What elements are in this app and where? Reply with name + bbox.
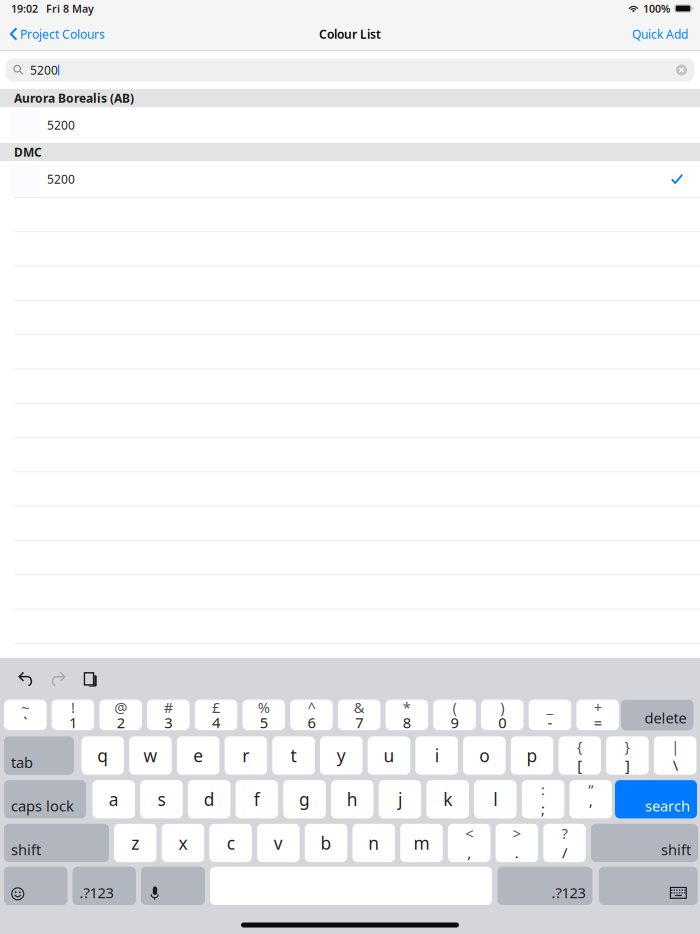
button[interactable]: ~ bbox=[4, 700, 46, 730]
staticText: ` bbox=[23, 713, 27, 732]
button[interactable]: 5200 bbox=[0, 107, 700, 143]
button[interactable]: @ bbox=[99, 700, 142, 730]
button[interactable]: tab bbox=[4, 736, 74, 775]
button[interactable]: k bbox=[426, 780, 469, 818]
button[interactable]: s bbox=[140, 780, 183, 818]
button[interactable]: | bbox=[654, 736, 696, 775]
button[interactable]: ! bbox=[52, 700, 94, 730]
button[interactable]: p bbox=[511, 736, 553, 775]
staticText: ’ bbox=[589, 799, 592, 819]
button[interactable]: + bbox=[576, 700, 619, 730]
button[interactable]: t bbox=[272, 736, 315, 775]
button[interactable]: ( bbox=[433, 700, 476, 730]
staticText: # bbox=[164, 698, 173, 717]
button[interactable]: Undo bbox=[10, 663, 42, 695]
staticText: 0 bbox=[498, 713, 506, 732]
staticText: tab bbox=[11, 752, 33, 772]
button[interactable]: .?123 bbox=[497, 867, 592, 905]
button[interactable]: & bbox=[338, 700, 380, 730]
button[interactable]: m bbox=[400, 824, 443, 862]
button[interactable]: shift bbox=[4, 824, 109, 862]
staticText: delete bbox=[644, 708, 686, 727]
button[interactable]: £ bbox=[195, 700, 237, 730]
staticText: i bbox=[435, 744, 439, 767]
button[interactable]: Dictate bbox=[141, 867, 205, 905]
staticText: ; bbox=[541, 799, 545, 819]
button[interactable]: ” bbox=[569, 780, 612, 818]
staticText: w bbox=[143, 744, 157, 767]
button[interactable]: e bbox=[177, 736, 219, 775]
button[interactable]: Clear text bbox=[676, 64, 687, 75]
staticText: . bbox=[515, 843, 519, 862]
button[interactable]: } bbox=[606, 736, 649, 775]
button[interactable]: v bbox=[257, 824, 300, 862]
button[interactable]: { bbox=[558, 736, 601, 775]
staticText: 9 bbox=[451, 713, 459, 732]
staticText: + bbox=[594, 698, 602, 717]
button[interactable]: < bbox=[448, 824, 490, 862]
button[interactable]: _ bbox=[529, 700, 571, 730]
staticText: e bbox=[193, 744, 203, 767]
button[interactable]: i bbox=[415, 736, 458, 775]
button[interactable]: Redo bbox=[42, 663, 74, 695]
button[interactable]: * bbox=[386, 700, 428, 730]
button[interactable]: u bbox=[368, 736, 410, 775]
button[interactable]: caps lock bbox=[4, 780, 86, 818]
button[interactable]: .?123 bbox=[72, 867, 136, 905]
staticText: _ bbox=[546, 698, 553, 717]
button[interactable]: > bbox=[496, 824, 538, 862]
button[interactable]: Quick Add bbox=[620, 17, 700, 50]
button[interactable]: h bbox=[331, 780, 373, 818]
button[interactable]: g bbox=[283, 780, 326, 818]
staticText: .?123 bbox=[79, 883, 113, 902]
staticText: ) bbox=[500, 698, 504, 717]
button[interactable]: Project Colours bbox=[0, 17, 115, 50]
button[interactable]: z bbox=[114, 824, 156, 862]
button[interactable]: 5200 bbox=[0, 161, 700, 197]
button[interactable]: Paste bbox=[74, 663, 104, 694]
button[interactable]: x bbox=[162, 824, 204, 862]
button[interactable]: f bbox=[236, 780, 278, 818]
button[interactable]: ) bbox=[481, 700, 523, 730]
staticText: Aurora Borealis (AB) bbox=[14, 90, 134, 106]
staticText: \ bbox=[673, 755, 678, 775]
button[interactable]: delete bbox=[621, 700, 693, 730]
button[interactable]: r bbox=[225, 736, 267, 775]
button[interactable]: a bbox=[92, 780, 135, 818]
staticText: < bbox=[465, 824, 473, 843]
button[interactable]: q bbox=[81, 736, 124, 775]
button[interactable]: o bbox=[463, 736, 506, 775]
staticText: c bbox=[227, 831, 235, 854]
staticText: 3 bbox=[164, 713, 172, 732]
staticText: [ bbox=[577, 755, 582, 775]
button[interactable]: # bbox=[147, 700, 190, 730]
button[interactable]: search bbox=[615, 780, 697, 818]
staticText: s bbox=[157, 788, 165, 811]
staticText: 4 bbox=[212, 713, 220, 732]
button[interactable]: n bbox=[352, 824, 395, 862]
staticText: b bbox=[321, 831, 332, 854]
button[interactable]: c bbox=[209, 824, 252, 862]
button[interactable]: : bbox=[522, 780, 564, 818]
button[interactable]: % bbox=[242, 700, 285, 730]
staticText: v bbox=[274, 831, 283, 854]
button[interactable]: Emoji bbox=[4, 867, 67, 905]
button[interactable]: shift bbox=[591, 824, 698, 862]
button[interactable]: d bbox=[188, 780, 230, 818]
button[interactable]: y bbox=[320, 736, 362, 775]
button[interactable]: b bbox=[305, 824, 347, 862]
button[interactable]: w bbox=[129, 736, 172, 775]
button[interactable]: ? bbox=[543, 824, 586, 862]
staticText: f bbox=[254, 788, 260, 811]
staticText: 19:02 bbox=[11, 1, 38, 16]
staticText: 1 bbox=[69, 713, 77, 732]
button[interactable]: ^ bbox=[290, 700, 333, 730]
staticText: j bbox=[398, 788, 402, 811]
button[interactable]: j bbox=[379, 780, 421, 818]
staticText: - bbox=[547, 713, 552, 732]
staticText: 5200 bbox=[30, 62, 58, 78]
staticText: caps lock bbox=[11, 796, 74, 816]
button[interactable]: l bbox=[474, 780, 517, 818]
button[interactable]: Hide Keyboard bbox=[599, 867, 698, 905]
